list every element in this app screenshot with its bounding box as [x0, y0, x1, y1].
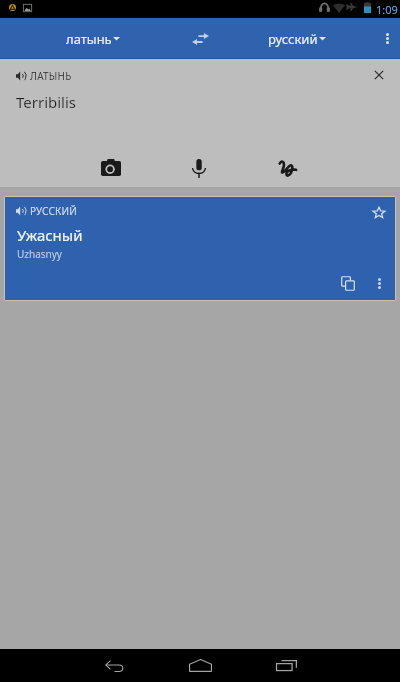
button[interactable]: Recent apps	[256, 649, 316, 682]
button[interactable]: русский	[268, 18, 336, 59]
staticText: РУССКИЙ	[30, 204, 77, 218]
button[interactable]: Voice input	[177, 149, 221, 187]
button[interactable]: More options	[363, 267, 395, 299]
button[interactable]: Swap languages	[180, 18, 220, 59]
staticText: Uzhasnyy	[17, 247, 62, 261]
staticText: латынь	[66, 30, 112, 48]
button[interactable]: Clear	[359, 59, 398, 91]
button[interactable]: латынь	[66, 18, 130, 59]
button[interactable]: Handwriting input	[265, 148, 309, 187]
button[interactable]: Home	[170, 649, 230, 682]
staticText: 1:09	[376, 2, 398, 17]
button[interactable]: Camera input	[89, 147, 133, 187]
staticText: русский	[268, 30, 318, 48]
staticText: ЛАТЫНЬ	[30, 69, 72, 83]
button[interactable]: Save to phrasebook	[365, 198, 393, 226]
staticText: Terribilis	[16, 92, 77, 112]
button[interactable]: Back	[84, 649, 144, 682]
button[interactable]: РУССКИЙ	[5, 197, 395, 300]
staticText: Ужасный	[17, 225, 83, 245]
button[interactable]: Copy	[332, 267, 364, 299]
button[interactable]: More options	[374, 18, 400, 59]
